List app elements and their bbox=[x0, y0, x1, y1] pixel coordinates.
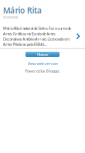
staticText: Mário Rita é natural de Sintra. Fez o cu… bbox=[3, 26, 71, 47]
button[interactable]: Next post bbox=[73, 27, 80, 45]
staticText: BIOGRAFIA bbox=[3, 16, 18, 19]
button[interactable]: View web version bbox=[0, 61, 85, 66]
staticText: Powered by Blogger. bbox=[25, 68, 60, 73]
button[interactable]: Home bbox=[25, 52, 59, 57]
staticText: Mário Rita bbox=[3, 5, 42, 16]
staticText: View web version bbox=[27, 61, 57, 66]
staticText: Home bbox=[37, 52, 48, 57]
